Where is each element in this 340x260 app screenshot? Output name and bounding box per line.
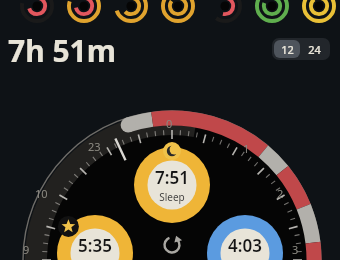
staticText: 12	[281, 42, 294, 57]
staticText: 1	[243, 141, 250, 156]
button[interactable]: Activity ring 3	[114, 0, 148, 23]
button[interactable]: Activity ring 4	[161, 0, 195, 23]
staticText: 24	[308, 42, 321, 57]
staticText: 3	[292, 242, 299, 257]
button[interactable]: 24	[300, 40, 328, 58]
button[interactable]: Refresh	[161, 234, 183, 256]
button[interactable]: 7:51	[134, 147, 210, 223]
staticText: 7h 51m	[8, 30, 117, 71]
button[interactable]: 12	[274, 40, 300, 58]
staticText: 0	[166, 116, 173, 131]
staticText: 5:35	[78, 234, 112, 257]
staticText: 7:51	[155, 166, 189, 189]
button[interactable]: 4:03	[207, 215, 283, 260]
button[interactable]: Activity ring 2	[67, 0, 101, 23]
button[interactable]: Sleep dial	[0, 0, 340, 260]
staticText: 2	[277, 186, 284, 201]
staticText: Sleep	[159, 190, 185, 204]
button[interactable]: Activity ring 1	[20, 0, 54, 23]
button[interactable]: 5:35	[57, 215, 133, 260]
button[interactable]: Activity ring 7	[302, 0, 336, 23]
staticText: 10	[35, 186, 48, 201]
button[interactable]: Activity ring 6	[255, 0, 289, 23]
staticText: 4:03	[228, 234, 262, 257]
staticText: 9	[23, 242, 30, 257]
staticText: 23	[88, 139, 101, 154]
button[interactable]: Activity ring 5	[208, 0, 242, 23]
